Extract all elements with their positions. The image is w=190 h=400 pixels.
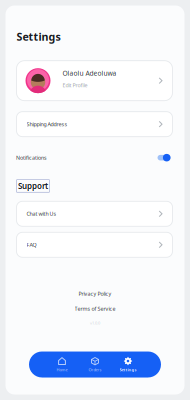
staticText: Settings [119,367,136,372]
staticText: v1.0.0 [90,320,100,325]
staticText: Orders [88,367,101,372]
staticText: Notifications [16,154,47,161]
button[interactable]: Privacy Policy [78,290,111,297]
button[interactable]: Orders [78,351,111,377]
button[interactable]: FAQ [16,232,172,257]
button[interactable]: Notifications [156,153,172,162]
button[interactable]: Settings [111,351,144,377]
staticText: Privacy Policy [78,290,111,297]
staticText: Olaolu Adeoluwa [62,69,116,78]
button[interactable]: Shipping Address [16,112,172,137]
button[interactable]: Terms of Service [74,297,115,312]
staticText: Home [56,367,67,372]
staticText: Edit Profile [62,82,87,89]
staticText: Support [18,181,48,191]
staticText: Terms of Service [74,305,115,312]
button[interactable]: Home [45,351,78,377]
staticText: Shipping Address [26,121,67,128]
staticText: Chat with Us [26,210,56,217]
staticText: FAQ [26,241,36,248]
button[interactable]: Chat with Us [16,201,172,226]
button[interactable]: Olaolu Adeoluwa [16,61,172,101]
staticText: Settings [16,29,60,44]
